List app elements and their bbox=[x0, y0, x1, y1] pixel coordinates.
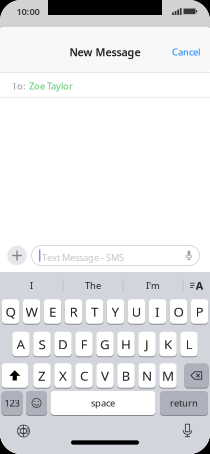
staticText: L bbox=[185, 335, 192, 353]
staticText: E bbox=[49, 303, 56, 320]
button[interactable]: U bbox=[128, 299, 145, 324]
button[interactable]: Q bbox=[2, 299, 19, 324]
button[interactable]: Return bbox=[160, 390, 208, 415]
staticText: F bbox=[80, 335, 87, 353]
button[interactable]: W bbox=[23, 299, 40, 324]
staticText: V bbox=[101, 367, 109, 384]
staticText: W bbox=[25, 303, 37, 320]
button[interactable]: K bbox=[159, 331, 177, 357]
staticText: I'm bbox=[146, 279, 160, 292]
button[interactable]: Dictate bbox=[185, 251, 193, 260]
staticText: X bbox=[59, 367, 67, 384]
button[interactable]: Cancel bbox=[172, 46, 200, 58]
button[interactable]: S bbox=[33, 331, 51, 357]
button[interactable]: E bbox=[44, 299, 61, 324]
staticText: S bbox=[38, 335, 45, 353]
button[interactable]: V bbox=[96, 363, 114, 388]
button[interactable]: B bbox=[117, 363, 135, 388]
staticText: T bbox=[91, 303, 98, 320]
button[interactable]: Emoji bbox=[26, 390, 47, 415]
staticText: Z bbox=[38, 367, 46, 384]
staticText: To: bbox=[12, 80, 26, 92]
button[interactable]: J bbox=[138, 331, 156, 357]
button[interactable]: A bbox=[12, 331, 30, 357]
staticText: H bbox=[121, 335, 131, 353]
button[interactable]: G bbox=[96, 331, 114, 357]
button[interactable]: Z bbox=[33, 363, 51, 388]
staticText: Cancel bbox=[172, 46, 200, 58]
staticText: I bbox=[155, 303, 160, 320]
button[interactable]: Shift bbox=[1, 363, 28, 388]
button[interactable]: Numbers bbox=[1, 390, 22, 415]
staticText: 10:00 bbox=[16, 5, 39, 18]
staticText: return bbox=[170, 397, 198, 409]
staticText: A bbox=[16, 335, 25, 353]
button[interactable]: C bbox=[75, 363, 93, 388]
staticText: D bbox=[58, 335, 68, 353]
button[interactable]: T bbox=[86, 299, 103, 324]
button[interactable]: P bbox=[191, 299, 208, 324]
button[interactable]: F bbox=[75, 331, 93, 357]
button[interactable]: Next keyboard bbox=[17, 424, 30, 437]
staticText: G bbox=[100, 335, 110, 353]
staticText: K bbox=[164, 335, 172, 353]
button[interactable]: O bbox=[170, 299, 187, 324]
button[interactable]: N bbox=[138, 363, 156, 388]
button[interactable]: The bbox=[68, 275, 118, 295]
button[interactable]: H bbox=[117, 331, 135, 357]
button[interactable]: M bbox=[159, 363, 177, 388]
staticText: B bbox=[121, 367, 130, 384]
staticText: Text Message - SMS bbox=[42, 251, 124, 264]
staticText: space bbox=[91, 397, 115, 409]
button[interactable]: Predictive input bbox=[190, 278, 203, 293]
staticText: Q bbox=[5, 303, 15, 320]
staticText: Y bbox=[111, 303, 119, 320]
button[interactable]: Space bbox=[50, 390, 155, 415]
staticText: N bbox=[142, 367, 152, 384]
staticText: R bbox=[69, 303, 77, 320]
staticText: I bbox=[30, 279, 33, 292]
button[interactable]: Dictation bbox=[182, 424, 193, 437]
button[interactable]: R bbox=[65, 299, 82, 324]
button[interactable]: I bbox=[6, 275, 56, 295]
staticText: A bbox=[196, 278, 203, 293]
staticText: New Message bbox=[69, 45, 140, 59]
staticText: J bbox=[145, 335, 149, 353]
button[interactable]: Zoe Taylor bbox=[29, 80, 73, 92]
button[interactable]: Y bbox=[107, 299, 124, 324]
staticText: M bbox=[162, 367, 174, 384]
button[interactable]: L bbox=[180, 331, 198, 357]
staticText: The bbox=[85, 279, 101, 292]
button[interactable]: Add attachment bbox=[7, 246, 27, 265]
staticText: O bbox=[173, 303, 183, 320]
staticText: C bbox=[80, 367, 88, 384]
staticText: 123 bbox=[4, 397, 19, 409]
staticText: U bbox=[131, 303, 141, 320]
button[interactable]: I'm bbox=[128, 275, 178, 295]
button[interactable]: X bbox=[54, 363, 72, 388]
button[interactable]: I bbox=[149, 299, 166, 324]
staticText: P bbox=[195, 303, 203, 320]
button[interactable]: D bbox=[54, 331, 72, 357]
staticText: Zoe Taylor bbox=[29, 80, 73, 92]
button[interactable]: Delete bbox=[184, 363, 208, 388]
